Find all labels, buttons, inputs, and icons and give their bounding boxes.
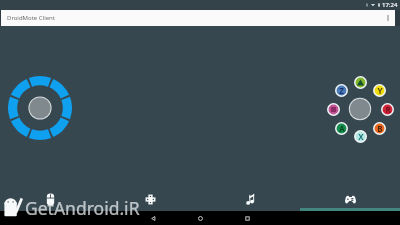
button[interactable]: Direction pad: [8, 76, 72, 140]
staticText: Y: [377, 85, 383, 96]
button[interactable]: Button △: [354, 76, 367, 89]
button[interactable]: Dpad: [100, 188, 200, 211]
button[interactable]: Button □: [327, 103, 340, 116]
button[interactable]: Home: [193, 211, 207, 225]
staticText: DroidMote Client: [7, 14, 55, 22]
button[interactable]: Gamepad: [300, 188, 400, 211]
staticText: 17:24: [382, 1, 398, 9]
staticText: Z: [339, 85, 344, 96]
staticText: R: [385, 104, 391, 115]
staticText: X: [358, 131, 364, 142]
button[interactable]: Button A: [335, 122, 348, 135]
button[interactable]: More options: [381, 10, 395, 26]
staticText: B: [377, 123, 383, 134]
button[interactable]: Button Z: [335, 84, 348, 97]
button[interactable]: Button R: [381, 103, 394, 116]
button[interactable]: Media: [200, 188, 300, 211]
button[interactable]: Mouse: [0, 188, 100, 211]
button[interactable]: Button Y: [373, 84, 386, 97]
button[interactable]: Button B: [373, 122, 386, 135]
button[interactable]: Button X: [354, 130, 367, 143]
button[interactable]: Back: [146, 211, 160, 225]
staticText: A: [339, 123, 345, 134]
staticText: GetAndroid.iR: [25, 196, 140, 220]
button[interactable]: Recents: [240, 211, 254, 225]
